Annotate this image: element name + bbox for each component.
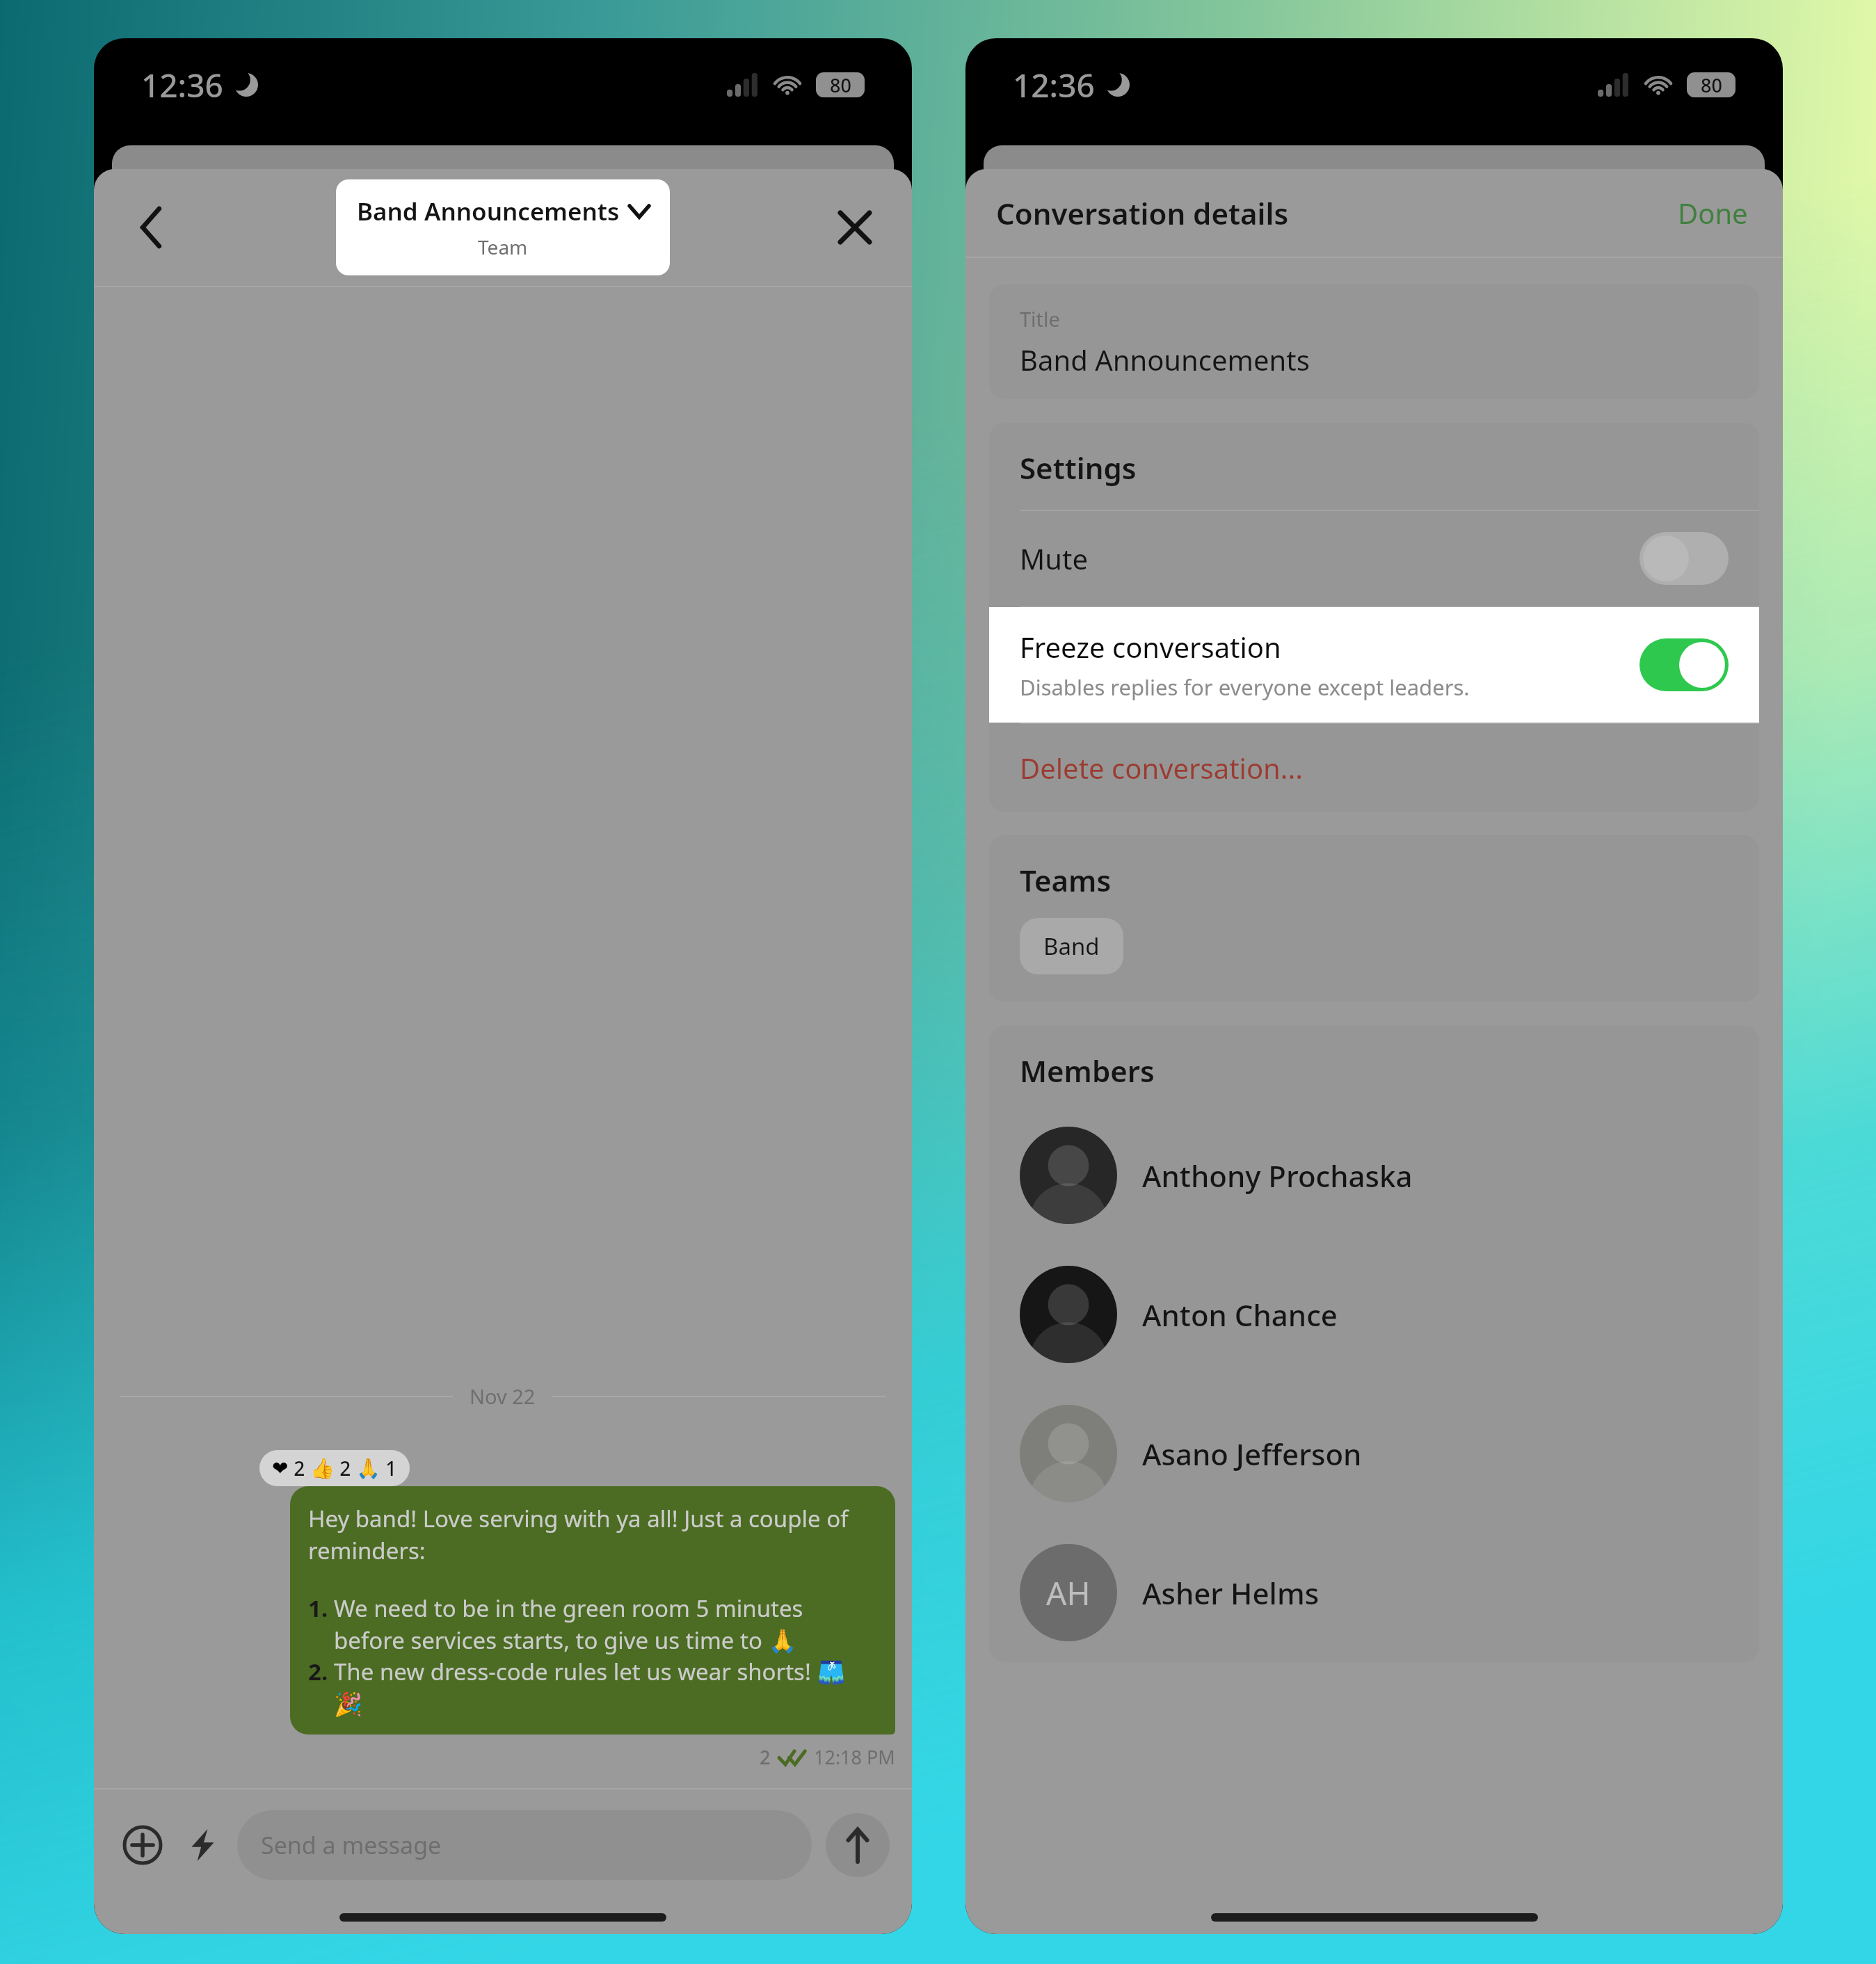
button[interactable]: Send a message <box>237 1810 812 1880</box>
staticText: Asher Helms <box>1142 1573 1320 1613</box>
staticText: 2. <box>308 1656 334 1687</box>
staticText: 1 <box>380 1455 397 1481</box>
staticText: ❤️ <box>272 1457 289 1480</box>
staticText: 12:36 <box>141 63 223 107</box>
staticText: Send a message <box>261 1829 442 1861</box>
button[interactable]: Delete conversation... <box>989 724 1759 812</box>
button[interactable]: Band <box>1020 918 1123 974</box>
staticText: The new dress-code rules let us wear sho… <box>334 1656 877 1718</box>
staticText: 🙏 <box>356 1457 380 1480</box>
button[interactable]: Band Announcements <box>336 179 670 275</box>
staticText: We need to be in the green room 5 minute… <box>334 1593 877 1656</box>
button[interactable]: Close <box>827 200 883 255</box>
staticText: Mute <box>1020 540 1088 577</box>
staticText: Anthony Prochaska <box>1142 1156 1413 1196</box>
staticText: Team <box>478 234 528 260</box>
button[interactable]: Freeze conversation <box>989 607 1759 723</box>
staticText: AH <box>1046 1571 1091 1615</box>
staticText: 12:36 <box>1013 63 1095 107</box>
staticText: 2 <box>289 1455 310 1481</box>
staticText: Asano Jefferson <box>1142 1434 1362 1474</box>
staticText: Band <box>1043 931 1100 962</box>
button[interactable]: AH <box>1020 1523 1759 1662</box>
staticText: Band Announcements <box>1020 341 1310 378</box>
button[interactable]: On <box>1640 638 1729 691</box>
staticText: Settings <box>1020 448 1137 488</box>
button[interactable]: Anton Chance <box>1020 1245 1759 1384</box>
staticText: Conversation details <box>996 193 1289 233</box>
staticText: Members <box>1020 1051 1155 1090</box>
staticText: Hey band! Love serving with ya all! Just… <box>308 1503 877 1566</box>
staticText: Band Announcements <box>357 195 620 228</box>
button[interactable]: Asano Jefferson <box>1020 1384 1759 1523</box>
staticText: Disables replies for everyone except lea… <box>1020 673 1470 702</box>
staticText: Title <box>1020 305 1060 332</box>
staticText: 2 <box>760 1744 771 1770</box>
button[interactable]: Done <box>1674 190 1752 236</box>
button[interactable]: Send <box>826 1813 890 1877</box>
staticText: 80 <box>830 72 851 97</box>
staticText: 👍 <box>310 1457 335 1480</box>
staticText: Anton Chance <box>1142 1295 1338 1335</box>
staticText: Teams <box>1020 860 1112 900</box>
button[interactable]: Off <box>1640 532 1729 585</box>
button[interactable]: ❤️ <box>259 1450 410 1486</box>
staticText: Freeze conversation <box>1020 628 1281 666</box>
staticText: Done <box>1678 194 1748 232</box>
button[interactable]: Anthony Prochaska <box>1020 1106 1759 1245</box>
button[interactable]: Add attachment <box>116 1819 169 1872</box>
staticText: 12:18 PM <box>814 1744 895 1770</box>
staticText: Delete conversation... <box>1020 749 1303 787</box>
button[interactable]: Mute <box>989 511 1759 606</box>
staticText: 80 <box>1701 72 1722 97</box>
staticText: Nov 22 <box>470 1383 536 1410</box>
button[interactable]: Hey band! Love serving with ya all! Just… <box>290 1486 895 1734</box>
button[interactable]: Back <box>123 200 179 255</box>
staticText: 1. <box>308 1593 334 1624</box>
staticText: 2 <box>335 1455 356 1481</box>
button[interactable]: Quick actions <box>179 1821 226 1869</box>
